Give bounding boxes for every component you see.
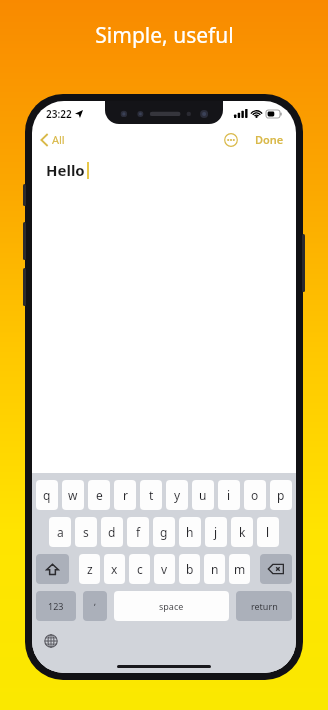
staticText: j xyxy=(214,524,218,540)
staticText: e xyxy=(96,487,103,503)
staticText: Simple, useful xyxy=(95,21,234,50)
button[interactable]: r xyxy=(114,480,136,510)
staticText: l xyxy=(266,524,270,540)
staticText: b xyxy=(186,561,194,577)
staticText: o xyxy=(251,487,259,503)
staticText: s xyxy=(83,524,89,540)
staticText: i xyxy=(227,487,231,503)
button[interactable]: k xyxy=(231,517,253,547)
staticText: h xyxy=(186,524,194,540)
button[interactable]: d xyxy=(101,517,123,547)
staticText: x xyxy=(111,561,118,577)
staticText: f xyxy=(136,524,141,540)
button[interactable]: a xyxy=(49,517,71,547)
button[interactable]: p xyxy=(270,480,292,510)
staticText: d xyxy=(108,524,116,540)
button[interactable]: q xyxy=(36,480,58,510)
staticText: ʼ xyxy=(94,600,96,612)
button[interactable]: n xyxy=(204,554,225,584)
staticText: k xyxy=(239,524,246,540)
button[interactable]: j xyxy=(205,517,227,547)
staticText: w xyxy=(68,487,78,503)
button[interactable]: z xyxy=(79,554,100,584)
button[interactable]: o xyxy=(244,480,266,510)
staticText: z xyxy=(87,561,93,577)
button[interactable]: i xyxy=(218,480,240,510)
button[interactable]: Comma xyxy=(83,591,107,621)
button[interactable]: x xyxy=(104,554,125,584)
button[interactable]: l xyxy=(257,517,279,547)
staticText: v xyxy=(161,561,168,577)
staticText: space xyxy=(159,600,184,612)
button[interactable]: h xyxy=(179,517,201,547)
staticText: g xyxy=(160,524,168,540)
button[interactable]: 123 xyxy=(36,591,76,621)
staticText: 23:22 xyxy=(46,107,72,121)
staticText: m xyxy=(234,561,246,577)
button[interactable]: y xyxy=(166,480,188,510)
staticText: return xyxy=(251,600,278,612)
button[interactable]: c xyxy=(129,554,150,584)
staticText: Done xyxy=(255,132,284,147)
staticText: q xyxy=(43,487,51,503)
button[interactable]: e xyxy=(88,480,110,510)
button[interactable]: Backspace xyxy=(260,554,292,584)
button[interactable]: m xyxy=(229,554,250,584)
button[interactable]: Done xyxy=(249,128,296,151)
staticText: p xyxy=(277,487,285,503)
staticText: r xyxy=(123,487,128,503)
button[interactable]: return xyxy=(236,591,292,621)
button[interactable]: s xyxy=(75,517,97,547)
staticText: y xyxy=(174,487,181,503)
staticText: a xyxy=(57,524,64,540)
button[interactable]: u xyxy=(192,480,214,510)
button[interactable]: space xyxy=(114,591,229,621)
staticText: c xyxy=(137,561,143,577)
button[interactable]: Hello xyxy=(32,153,296,473)
button[interactable]: b xyxy=(179,554,200,584)
button[interactable]: Shift xyxy=(36,554,69,584)
staticText: 123 xyxy=(48,600,64,612)
staticText: u xyxy=(199,487,207,503)
staticText: n xyxy=(211,561,219,577)
staticText: Hello xyxy=(46,160,85,180)
button[interactable]: Change keyboard xyxy=(40,630,62,652)
button[interactable]: More options xyxy=(219,128,243,152)
button[interactable]: w xyxy=(62,480,84,510)
button[interactable]: t xyxy=(140,480,162,510)
button[interactable]: v xyxy=(154,554,175,584)
button[interactable]: All xyxy=(32,128,73,151)
staticText: All xyxy=(52,132,65,147)
staticText: t xyxy=(149,487,154,503)
button[interactable]: f xyxy=(127,517,149,547)
button[interactable]: g xyxy=(153,517,175,547)
